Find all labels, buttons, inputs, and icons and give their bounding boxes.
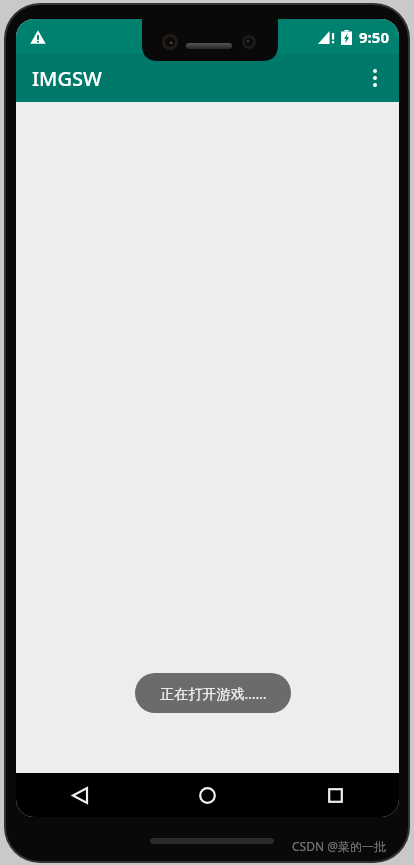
button[interactable]: 正在打开游戏…… bbox=[135, 673, 291, 713]
button[interactable]: Recent apps bbox=[271, 773, 399, 817]
button[interactable]: Back bbox=[16, 773, 143, 817]
staticText: CSDN @菜的一批 bbox=[292, 838, 386, 854]
button[interactable]: More options bbox=[351, 54, 399, 102]
staticText: IMGSW bbox=[32, 65, 102, 92]
staticText: 9:50 bbox=[359, 27, 389, 47]
staticText: 正在打开游戏…… bbox=[160, 684, 267, 703]
button[interactable]: Home bbox=[143, 773, 271, 817]
